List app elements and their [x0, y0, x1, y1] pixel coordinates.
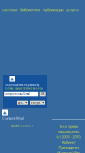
- button[interactable]: услуги: [66, 7, 78, 12]
- staticText: Все права защищены. (с) 2003 - 2010. Каб…: [56, 123, 81, 153]
- staticText: Только самые свежие анонсы: [5, 87, 43, 90]
- button[interactable]: Content Mail: [2, 109, 24, 121]
- staticText: OK: [41, 92, 45, 96]
- staticText: система: [2, 7, 17, 12]
- staticText: публикации: [43, 7, 63, 12]
- staticText: Введите Ваш E-mail: [5, 92, 30, 96]
- button[interactable]: OK: [40, 92, 46, 96]
- staticText: архив: [18, 101, 25, 104]
- button[interactable]: архив: [17, 101, 28, 105]
- button[interactable]: публикации: [43, 7, 63, 12]
- staticText: Архив с 2003 г.: [11, 124, 34, 127]
- button[interactable]: выпуск: [30, 101, 45, 105]
- staticText: Подпишитесь на рассылку: [5, 83, 39, 87]
- staticText: выпуск: [31, 101, 40, 104]
- staticText: услуги: [66, 7, 78, 12]
- button[interactable]: библиотека: [20, 7, 40, 12]
- button[interactable]: система: [2, 7, 17, 12]
- staticText: библиотека: [20, 7, 40, 12]
- staticText: Content Mail: [2, 115, 24, 121]
- button[interactable]: Архив с 2003 г.: [11, 124, 34, 127]
